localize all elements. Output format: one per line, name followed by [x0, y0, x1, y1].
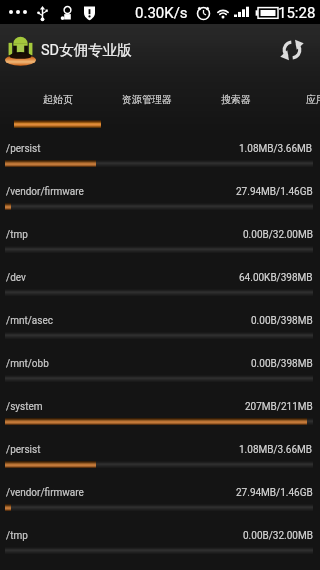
staticText: 搜索器 [221, 93, 251, 106]
button[interactable]: /persist [0, 135, 320, 178]
staticText: /mnt/asec [6, 315, 53, 327]
staticText: 0.00B/398MB [251, 315, 313, 327]
staticText: 207MB/211MB [245, 401, 313, 413]
button[interactable]: /persist [0, 436, 320, 479]
button[interactable]: /vendor/firmware [0, 178, 320, 221]
button[interactable]: 搜索器 [177, 76, 294, 127]
staticText: 起始页 [43, 93, 73, 106]
button[interactable]: /vendor/firmware [0, 479, 320, 522]
staticText: 0.30K/s [135, 4, 188, 22]
staticText: /dev [6, 272, 26, 284]
button[interactable]: /mnt/obb [0, 350, 320, 393]
staticText: /vendor/firmware [6, 186, 84, 198]
staticText: 1.08MB/3.66MB [239, 143, 313, 155]
staticText: /persist [6, 143, 41, 155]
button[interactable]: 起始页 [0, 76, 116, 127]
staticText: /system [6, 401, 43, 413]
staticText: /persist [6, 444, 41, 456]
staticText: 27.94MB/1.46GB [236, 487, 313, 499]
staticText: 0.00B/32.00MB [243, 530, 313, 542]
staticText: 1.08MB/3.66MB [239, 444, 313, 456]
staticText: 0.00B/398MB [251, 358, 313, 370]
staticText: /tmp [6, 530, 28, 542]
staticText: 15:28 [278, 4, 316, 22]
button[interactable]: /system [0, 393, 320, 436]
staticText: 64.00KB/398MB [239, 272, 313, 284]
staticText: SD女佣专业版 [41, 41, 132, 59]
button[interactable]: 应用 [294, 76, 320, 127]
button[interactable]: /tmp [0, 522, 320, 565]
button[interactable]: Refresh [274, 32, 310, 68]
button[interactable]: /tmp [0, 221, 320, 264]
staticText: 资源管理器 [122, 93, 172, 106]
staticText: 0.00B/32.00MB [243, 229, 313, 241]
button[interactable]: 资源管理器 [116, 76, 177, 127]
staticText: 27.94MB/1.46GB [236, 186, 313, 198]
staticText: /mnt/obb [6, 358, 49, 370]
staticText: 应用 [306, 93, 320, 106]
button[interactable]: /mnt/asec [0, 307, 320, 350]
staticText: /tmp [6, 229, 28, 241]
staticText: /vendor/firmware [6, 487, 84, 499]
button[interactable]: /dev [0, 264, 320, 307]
